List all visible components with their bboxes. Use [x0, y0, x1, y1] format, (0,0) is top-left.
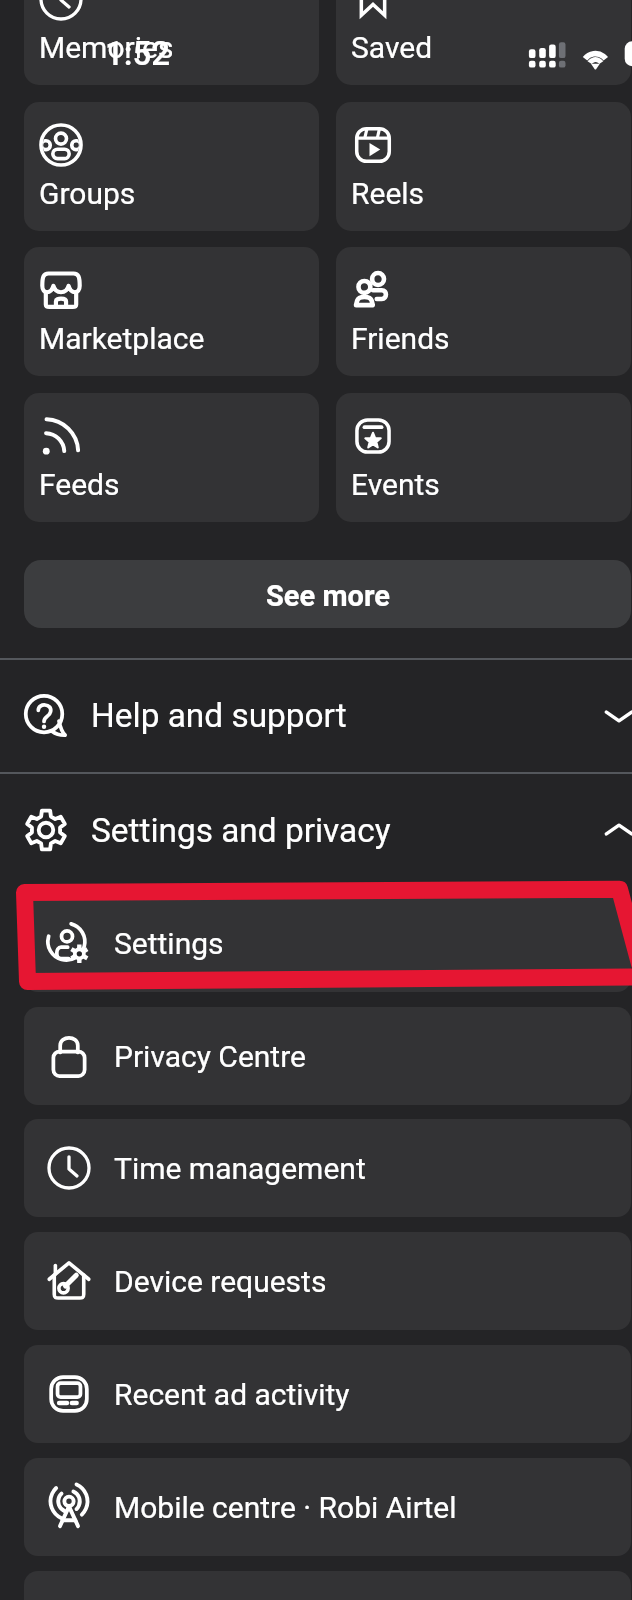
other: Status icons: [524, 36, 632, 72]
button[interactable]: See more: [24, 560, 631, 628]
staticText: Memories: [39, 30, 174, 65]
staticText: Events: [351, 467, 440, 502]
staticText: Feeds: [39, 467, 120, 502]
button[interactable]: Friends: [336, 247, 631, 376]
button[interactable]: Events: [336, 393, 631, 522]
button[interactable]: Recent ad activity: [24, 1345, 631, 1443]
button[interactable]: Settings: [24, 894, 631, 992]
button[interactable]: Settings and privacy: [0, 774, 632, 886]
staticText: Mobile centre · Robi Airtel: [114, 1490, 457, 1525]
staticText: Reels: [351, 176, 425, 211]
button[interactable]: Reels: [336, 102, 631, 231]
button[interactable]: Saved: [336, 0, 631, 85]
staticText: Friends: [351, 321, 450, 356]
button[interactable]: Time management: [24, 1119, 631, 1217]
staticText: Recent ad activity: [114, 1377, 350, 1412]
button[interactable]: Mobile centre · Robi Airtel: [24, 1458, 631, 1556]
staticText: Marketplace: [39, 321, 205, 356]
staticText: Settings and privacy: [91, 811, 391, 850]
button[interactable]: Privacy Centre: [24, 1007, 631, 1105]
staticText: See more: [266, 579, 390, 613]
staticText: Help and support: [91, 696, 347, 735]
staticText: Settings: [114, 926, 224, 961]
staticText: Privacy Centre: [114, 1039, 306, 1074]
staticText: 1:52: [105, 34, 171, 73]
button[interactable]: Feeds: [24, 393, 319, 522]
button[interactable]: Marketplace: [24, 247, 319, 376]
staticText: Groups: [39, 176, 136, 211]
staticText: Device requests: [114, 1264, 327, 1299]
button[interactable]: Memories: [24, 0, 319, 85]
staticText: Time management: [114, 1151, 366, 1186]
button[interactable]: Device requests: [24, 1232, 631, 1330]
button[interactable]: Help and support: [0, 659, 632, 772]
button[interactable]: Groups: [24, 102, 319, 231]
staticText: Saved: [351, 30, 433, 65]
